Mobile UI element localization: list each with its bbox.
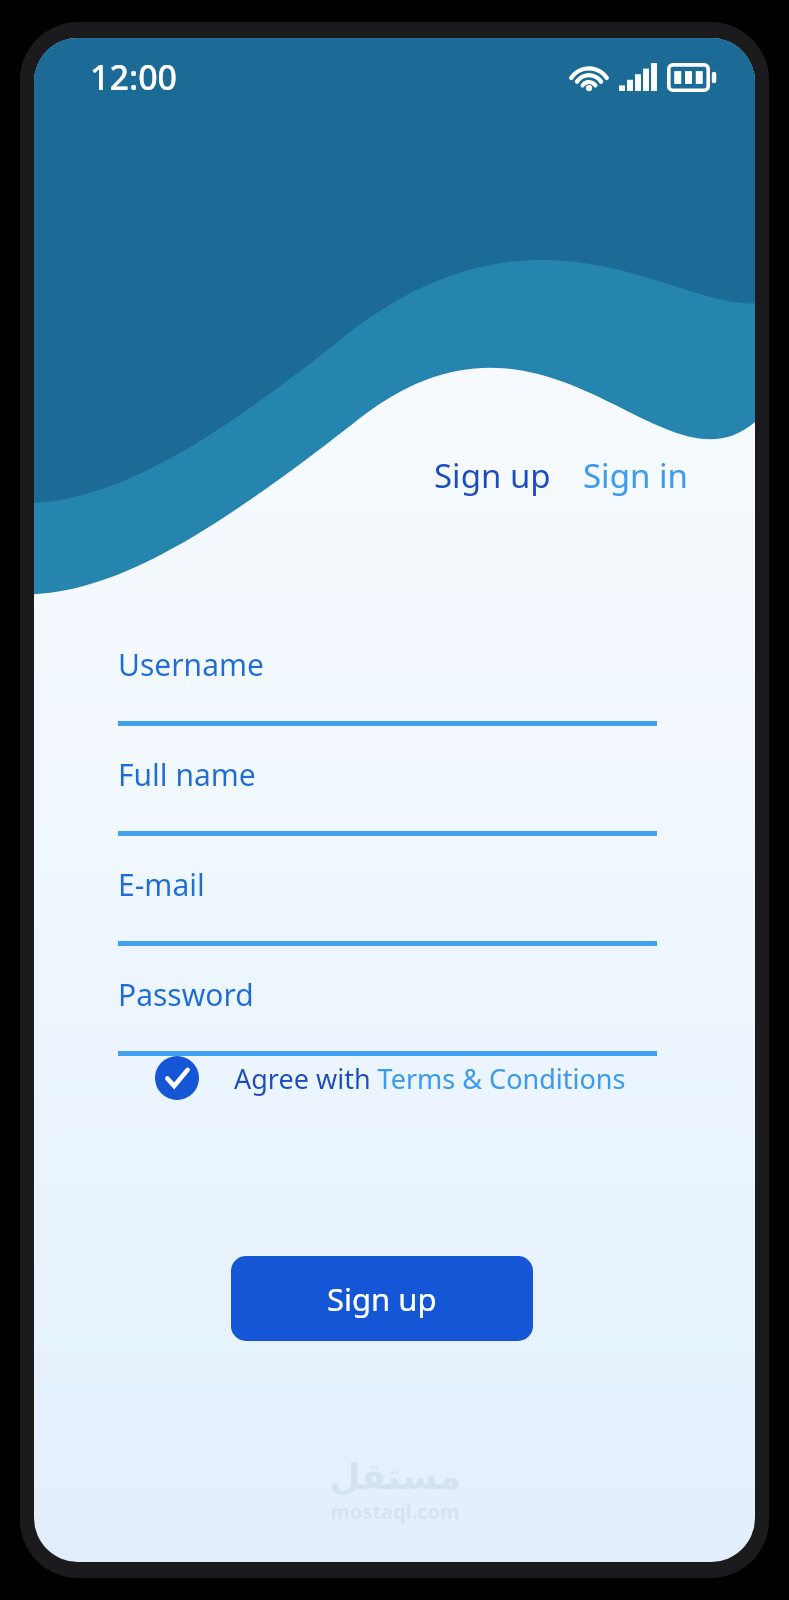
staticText: Username bbox=[118, 644, 264, 685]
staticText: E-mail bbox=[118, 864, 205, 905]
staticText: Sign up bbox=[434, 453, 551, 498]
staticText: 12:00 bbox=[90, 54, 178, 100]
staticText: Password bbox=[118, 974, 254, 1015]
staticText: Agree with Terms & Conditions bbox=[234, 1060, 626, 1097]
button[interactable]: Password bbox=[118, 968, 657, 1056]
button[interactable]: Username bbox=[118, 638, 657, 726]
button[interactable]: Full name bbox=[118, 748, 657, 836]
staticText: Sign up bbox=[327, 1278, 437, 1320]
staticText: Sign in bbox=[583, 453, 688, 498]
button[interactable]: Sign up bbox=[429, 446, 556, 505]
staticText: mostaql.com bbox=[330, 1498, 460, 1525]
button[interactable]: Agree with Terms and Conditions, checked bbox=[154, 1055, 626, 1101]
button[interactable]: E-mail bbox=[118, 858, 657, 946]
button[interactable]: Sign in bbox=[578, 446, 693, 505]
staticText: مستقل bbox=[329, 1456, 461, 1498]
other: Agree with Terms and Conditions, checked bbox=[154, 1055, 200, 1101]
staticText: Full name bbox=[118, 754, 256, 795]
button[interactable]: Sign up bbox=[231, 1256, 533, 1341]
